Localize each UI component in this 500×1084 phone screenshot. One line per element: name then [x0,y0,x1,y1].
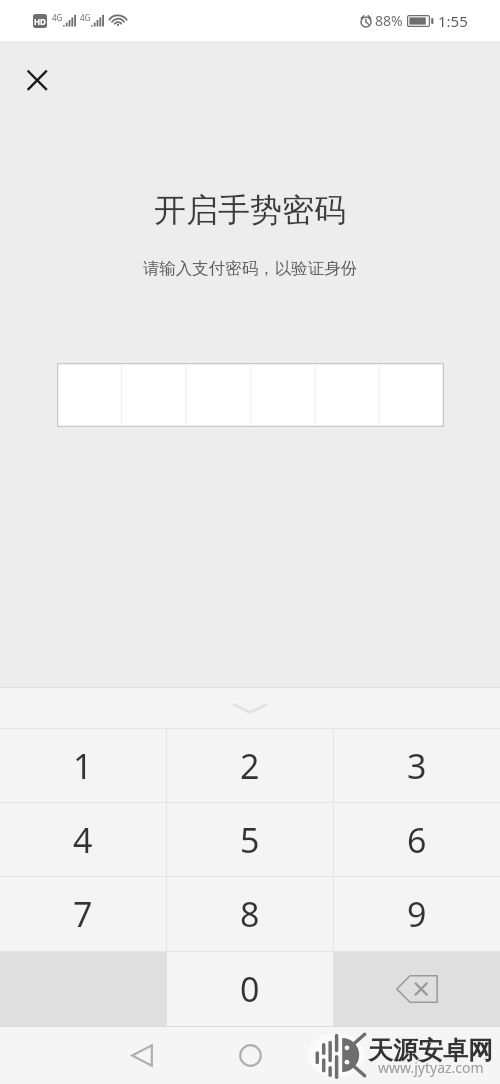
staticText: www.jytyaz.com [378,1058,484,1077]
staticText: 请输入支付密码，以验证身份 [0,258,500,279]
staticText: 5 [240,817,260,863]
staticText: 88% [375,11,403,30]
button[interactable]: Home [226,1031,274,1079]
button[interactable]: 3 [334,729,500,802]
staticText: 开启手势密码 [0,190,500,230]
staticText: 4G [52,12,63,23]
other: Backspace [396,975,438,1003]
button[interactable]: Close [16,59,59,102]
staticText: 天源安卓网 [368,1035,493,1066]
button[interactable]: 5 [167,803,333,876]
staticText: 9 [407,891,427,937]
button[interactable]: 1 [0,729,166,802]
button[interactable]: 8 [167,877,333,951]
button[interactable]: 6 [334,803,500,876]
staticText: 4G [80,12,91,23]
button[interactable]: 4 [0,803,166,876]
button[interactable]: Backspace [334,952,500,1026]
button[interactable]: 2 [167,729,333,802]
staticText: 7 [73,891,93,937]
staticText: 1:55 [438,11,468,31]
button[interactable]: 0 [167,952,333,1026]
staticText: 0 [240,966,260,1012]
staticText: 2 [240,743,260,789]
staticText: 3 [407,743,427,789]
staticText: HD [34,16,46,27]
staticText: 4 [73,817,93,863]
staticText: 6 [407,817,427,863]
button[interactable]: 7 [0,877,166,951]
button[interactable]: Back [118,1031,166,1079]
button[interactable]: 9 [334,877,500,951]
staticText: 1 [73,743,93,789]
staticText: 8 [240,891,260,937]
